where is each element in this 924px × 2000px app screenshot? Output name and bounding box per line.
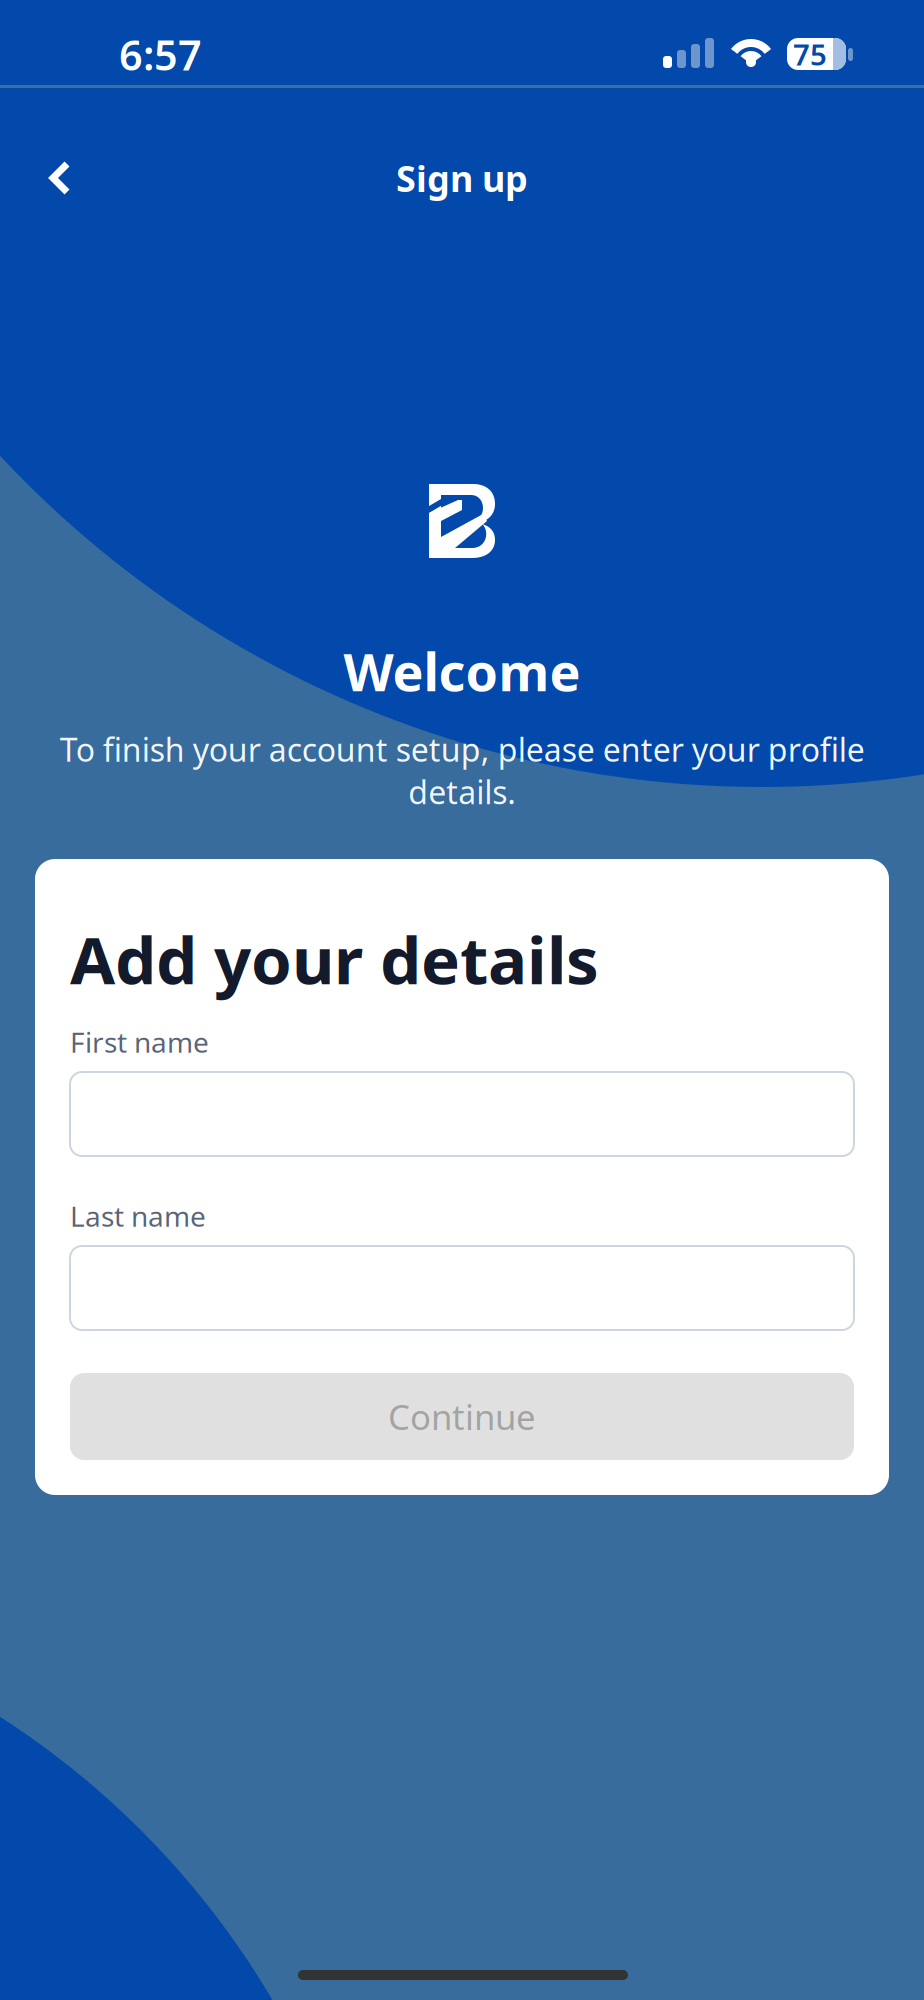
- staticText: First name: [70, 1023, 209, 1061]
- staticText: Continue: [388, 1393, 536, 1439]
- button[interactable]: Back: [24, 142, 96, 214]
- staticText: To finish your account setup, please ent…: [59, 728, 864, 813]
- staticText: 75: [793, 34, 827, 73]
- button[interactable]: Continue: [70, 1373, 854, 1460]
- staticText: 6:57: [119, 27, 202, 82]
- staticText: Welcome: [343, 636, 580, 706]
- button[interactable]: Last name: [70, 1246, 854, 1330]
- staticText: Last name: [70, 1197, 206, 1235]
- button[interactable]: First name: [70, 1072, 854, 1156]
- staticText: Add your details: [70, 916, 599, 1002]
- staticText: Sign up: [396, 154, 528, 202]
